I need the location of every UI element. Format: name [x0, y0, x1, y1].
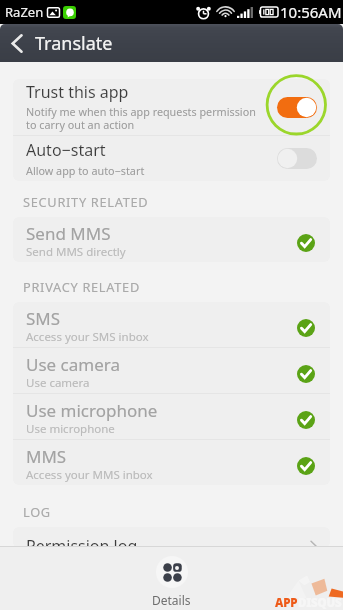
button[interactable]: Back	[5, 26, 29, 60]
staticText: Access your SMS inbox	[26, 329, 149, 345]
staticText: Auto−start	[26, 139, 106, 161]
staticText: LOG	[23, 503, 51, 520]
staticText: Trust this app	[26, 81, 129, 103]
staticText: Use camera	[26, 375, 90, 391]
staticText: Allow app to auto−start	[26, 163, 145, 178]
button[interactable]: Toggle	[277, 97, 317, 118]
staticText: Access your MMS inbox	[26, 467, 153, 483]
staticText: Notify me when this app requests permiss…	[26, 104, 256, 119]
staticText: SMS	[26, 307, 61, 330]
staticText: Translate	[35, 31, 113, 56]
staticText: SECURITY RELATED	[23, 193, 149, 210]
button[interactable]: Details	[152, 547, 191, 608]
button[interactable]: SMS	[13, 302, 330, 347]
staticText: Use microphone	[26, 421, 115, 437]
staticText: Use camera	[26, 353, 120, 376]
staticText: to carry out an action	[26, 117, 135, 132]
staticText: PRIVACY RELATED	[23, 278, 140, 295]
button[interactable]: Use microphone	[13, 394, 330, 439]
staticText: 10:56AM	[280, 2, 342, 22]
button[interactable]: Trust this app	[13, 79, 330, 135]
button[interactable]: MMS	[13, 440, 330, 485]
button[interactable]: Toggle	[277, 148, 317, 169]
staticText: Send MMS	[26, 222, 111, 245]
staticText: Use microphone	[26, 399, 158, 422]
staticText: APP	[275, 595, 298, 610]
button[interactable]: Auto−start	[13, 136, 330, 181]
staticText: MMS	[26, 445, 67, 468]
staticText: RaZen	[5, 3, 44, 21]
button[interactable]: Send MMS	[13, 217, 330, 262]
button[interactable]: Permission log	[13, 527, 330, 548]
staticText: Details	[152, 592, 191, 608]
staticText: Send MMS directly	[26, 244, 126, 260]
button[interactable]: Use camera	[13, 348, 330, 393]
staticText: DISQUS	[298, 595, 342, 610]
staticText: Permission log	[26, 535, 310, 548]
